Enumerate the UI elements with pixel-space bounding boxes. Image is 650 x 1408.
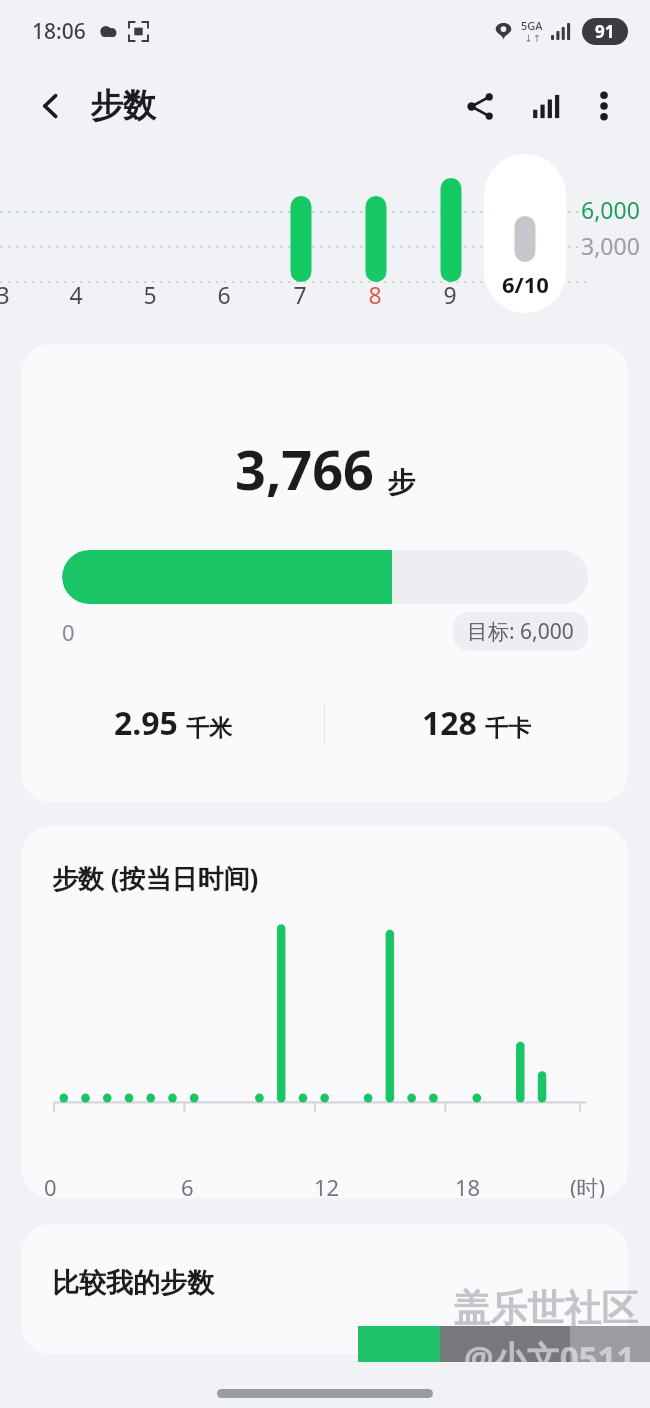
button[interactable]: Back xyxy=(26,81,76,131)
staticText: 千卡 xyxy=(485,714,531,743)
staticText: 6/10 xyxy=(502,269,549,299)
staticText: 3,766 xyxy=(235,432,374,506)
staticText: 12 xyxy=(314,1172,340,1198)
staticText: 4 xyxy=(62,279,90,310)
staticText: 0 xyxy=(44,1172,57,1198)
staticText: 2.95 xyxy=(114,701,178,745)
staticText: 8 xyxy=(361,279,389,310)
button[interactable]: 6/10 xyxy=(484,154,566,313)
button[interactable]: Share xyxy=(452,78,508,134)
staticText: 9 xyxy=(436,279,464,310)
staticText: 步数 (按当日时间) xyxy=(52,860,259,896)
staticText: 6 xyxy=(210,279,238,310)
staticText: 千米 xyxy=(186,714,232,743)
staticText: 步数 xyxy=(90,85,156,127)
staticText: 3 xyxy=(0,279,17,310)
button[interactable]: More options xyxy=(576,78,632,134)
staticText: 6,000 xyxy=(581,194,640,225)
staticText: @小文0511 xyxy=(464,1335,636,1380)
staticText: ↓↑ xyxy=(524,33,541,45)
staticText: 盖乐世社区 xyxy=(453,1285,638,1332)
button[interactable]: 3,766 xyxy=(22,344,628,802)
staticText: 5 xyxy=(136,279,164,310)
staticText: 6 xyxy=(181,1172,194,1198)
staticText: 7 xyxy=(286,279,314,310)
staticText: 91 xyxy=(595,20,615,43)
staticText: 18 xyxy=(455,1172,481,1198)
button[interactable]: 步数 (按当日时间) xyxy=(22,826,628,1198)
staticText: 3,000 xyxy=(581,230,640,261)
staticText: 18:06 xyxy=(32,17,86,46)
button[interactable]: 比较我的步数 xyxy=(22,1224,628,1354)
staticText: 5GA xyxy=(521,18,543,33)
button[interactable]: Chart xyxy=(516,78,572,134)
staticText: 目标: 6,000 xyxy=(467,617,574,646)
staticText: 比较我的步数 xyxy=(52,1266,214,1300)
staticText: (时) xyxy=(570,1172,606,1198)
staticText: 步 xyxy=(387,465,415,500)
staticText: 128 xyxy=(422,701,477,745)
staticText: 0 xyxy=(62,617,75,647)
